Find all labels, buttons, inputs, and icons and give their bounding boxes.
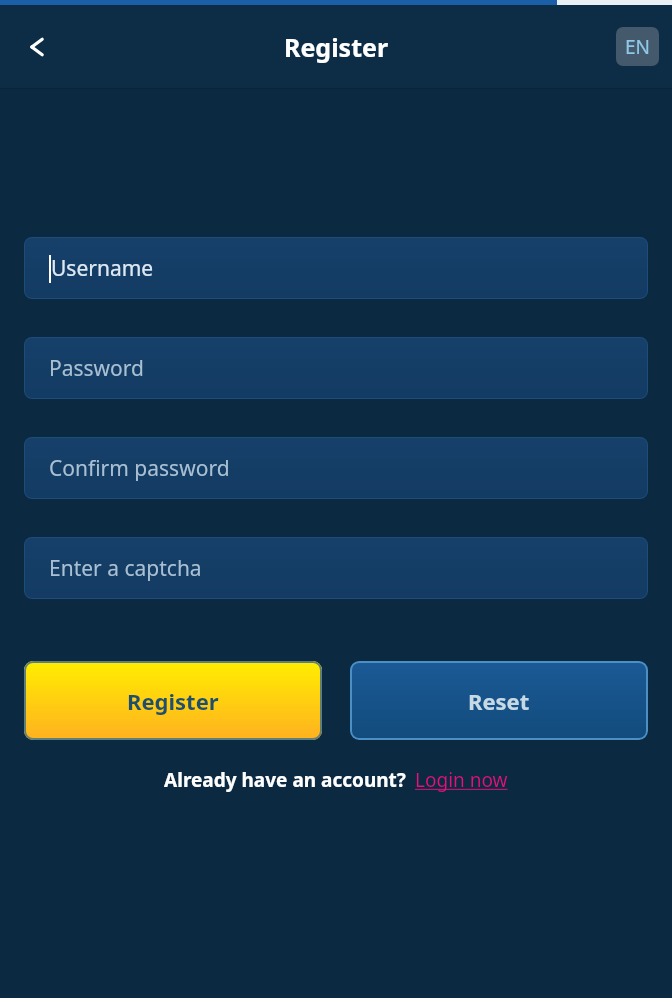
button[interactable]: Username — [24, 237, 648, 299]
staticText: Already have an account? — [164, 767, 406, 793]
staticText: Reset — [468, 686, 530, 716]
button[interactable]: Reset — [350, 661, 648, 740]
button[interactable]: Login now — [415, 767, 508, 793]
staticText: Username — [51, 254, 154, 283]
staticText: EN — [625, 34, 651, 60]
button[interactable]: Confirm password — [24, 437, 648, 499]
staticText: Confirm password — [49, 454, 230, 483]
button[interactable]: Change language — [616, 27, 659, 66]
staticText: Register — [127, 686, 219, 716]
button[interactable]: Enter a captcha — [24, 537, 648, 599]
staticText: Enter a captcha — [49, 554, 202, 583]
staticText: Password — [49, 354, 144, 383]
button[interactable]: Back — [8, 18, 66, 76]
staticText: Login now — [415, 767, 508, 793]
staticText: Register — [284, 30, 389, 64]
button[interactable]: Password — [24, 337, 648, 399]
button[interactable]: Register — [24, 661, 322, 740]
